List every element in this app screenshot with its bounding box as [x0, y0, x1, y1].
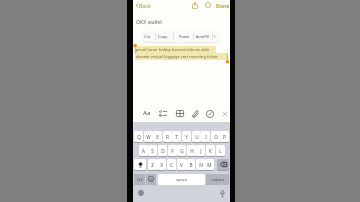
staticText: I	[205, 134, 207, 140]
button[interactable]: V	[177, 159, 186, 170]
staticText: J	[200, 148, 202, 154]
button[interactable]: ›	[206, 31, 224, 42]
button[interactable]: space	[158, 174, 205, 185]
button[interactable]: N	[196, 159, 205, 170]
staticText: S	[151, 148, 154, 154]
button[interactable]: J	[196, 145, 205, 156]
button[interactable]: Y	[182, 131, 191, 142]
button[interactable]: O	[211, 131, 220, 142]
button[interactable]: P	[220, 131, 229, 142]
button[interactable]: U	[192, 131, 201, 142]
button[interactable]: D	[158, 145, 167, 156]
staticText: Copy	[158, 34, 168, 39]
staticText: C	[170, 162, 173, 168]
staticText: K	[209, 148, 212, 154]
staticText: Cut	[144, 34, 151, 39]
button[interactable]	[192, 110, 199, 118]
staticText: donate virtual luggage cart morning tick…	[135, 54, 218, 60]
button[interactable]: F	[168, 145, 177, 156]
staticText: A	[142, 148, 145, 154]
button[interactable]: L	[216, 145, 225, 156]
button[interactable]: E	[153, 131, 162, 142]
button[interactable]: Aa	[143, 109, 151, 117]
button[interactable]	[146, 174, 156, 185]
staticText: OKX wallet	[136, 18, 163, 25]
button[interactable]: Paste	[175, 31, 193, 42]
staticText: V	[180, 162, 183, 168]
staticText: N	[199, 162, 203, 168]
button[interactable]: H	[187, 145, 196, 156]
staticText: U	[195, 134, 199, 140]
button[interactable]: S	[148, 145, 157, 156]
button[interactable]	[220, 190, 225, 197]
staticText: Y	[185, 134, 188, 140]
button[interactable]: Q	[134, 131, 143, 142]
staticText: E	[156, 134, 159, 140]
button[interactable]	[159, 110, 167, 117]
staticText: W	[146, 134, 151, 140]
staticText: M	[207, 162, 212, 168]
button[interactable]: Copy	[154, 31, 172, 42]
button[interactable]: B	[186, 159, 195, 170]
staticText: X	[160, 162, 163, 168]
button[interactable]	[222, 111, 228, 117]
button[interactable]: C	[167, 159, 176, 170]
button[interactable]: I	[201, 131, 210, 142]
button[interactable]: X	[157, 159, 166, 170]
button[interactable]: K	[206, 145, 215, 156]
button[interactable]: T	[172, 131, 181, 142]
button[interactable]: G	[177, 145, 186, 156]
staticText: D	[161, 148, 165, 154]
button[interactable]	[206, 110, 214, 118]
staticText: F	[171, 148, 174, 154]
button[interactable]: Back	[139, 2, 151, 9]
button[interactable]: W	[144, 131, 153, 142]
staticText: Q	[137, 134, 141, 140]
staticText: L	[219, 148, 222, 154]
staticText: AutoFill	[196, 34, 209, 39]
staticText: space	[176, 177, 187, 182]
button[interactable]	[138, 190, 144, 196]
button[interactable]: return	[206, 174, 229, 185]
staticText: return	[212, 177, 224, 182]
button[interactable]	[135, 3, 139, 8]
staticText: G	[180, 148, 184, 154]
staticText: B	[189, 162, 193, 168]
staticText: 123	[136, 177, 143, 182]
button[interactable]	[217, 159, 229, 170]
staticText: Paste	[179, 34, 190, 39]
button[interactable]	[192, 2, 198, 9]
button[interactable]: R	[163, 131, 172, 142]
staticText: ›	[214, 33, 216, 40]
button[interactable]: 123	[134, 174, 145, 185]
button[interactable]	[205, 2, 211, 8]
button[interactable]: M	[205, 159, 214, 170]
button[interactable]: Cut	[138, 31, 156, 42]
staticText: Z	[151, 162, 154, 168]
staticText: R	[166, 134, 169, 140]
button[interactable]: AutoFill	[193, 31, 211, 42]
button[interactable]	[176, 110, 184, 117]
button[interactable]: Z	[148, 159, 157, 170]
button[interactable]: Done	[216, 2, 230, 9]
button[interactable]	[134, 159, 146, 170]
staticText: O	[214, 134, 218, 140]
staticText: T	[175, 134, 178, 140]
staticText: proof inner hobby bounce blouse able	[135, 47, 210, 53]
button[interactable]: A	[139, 145, 148, 156]
staticText: P	[223, 134, 226, 140]
staticText: H	[190, 148, 194, 154]
